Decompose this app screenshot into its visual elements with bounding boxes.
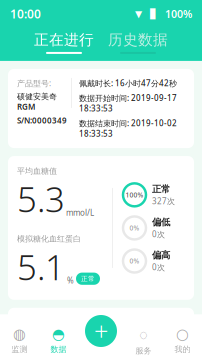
staticText: 0次	[152, 262, 165, 272]
staticText: 正常	[81, 275, 95, 283]
staticText: ›	[178, 318, 183, 339]
staticText: mmol/L	[66, 207, 94, 218]
staticText: 模拟糖化血红蛋白	[17, 234, 81, 244]
staticText: 正常	[152, 183, 170, 195]
staticText: +	[94, 314, 108, 348]
staticText: 历史数据	[108, 31, 168, 49]
staticText: 10:00	[10, 6, 41, 22]
staticText: 数据	[50, 344, 66, 354]
staticText: 共检测 327次 详细列表	[19, 321, 131, 335]
staticText: ▊	[150, 9, 157, 19]
staticText: ◌	[139, 324, 148, 344]
staticText: 数据开始时间: 2019-09-17 18:33:53	[79, 93, 177, 114]
staticText: 偏高	[152, 249, 170, 261]
staticText: ○	[176, 326, 189, 342]
button[interactable]: 共检测 327次 详细列表	[8, 308, 194, 349]
staticText: ◍	[13, 326, 26, 342]
button[interactable]: ◍	[0, 326, 39, 354]
staticText: 100%	[125, 190, 143, 199]
staticText: 0%	[129, 223, 139, 232]
staticText: 佩戴时长: 16小时47分42秒	[79, 78, 177, 89]
staticText: 数据结束时间: 2019-10-02 18:33:53	[79, 118, 177, 139]
staticText: 监测	[11, 344, 27, 354]
staticText: 我的	[174, 344, 190, 354]
button[interactable]: 正在进行	[34, 31, 94, 54]
staticText: 327次	[152, 196, 175, 206]
button[interactable]: 历史数据	[108, 31, 168, 54]
staticText: 5.1	[17, 244, 65, 290]
staticText: 硕健安美奇RGM	[17, 92, 57, 112]
button[interactable]: ◌	[124, 324, 163, 356]
staticText: 平均血糖值	[17, 166, 57, 176]
staticText: %	[67, 275, 74, 286]
staticText: 0次	[152, 229, 165, 239]
staticText: 0%	[129, 257, 139, 265]
staticText: 偏低	[152, 216, 170, 228]
button[interactable]: ○	[163, 326, 202, 354]
staticText: 服务	[135, 346, 151, 356]
staticText: 产品型号:	[17, 78, 51, 89]
staticText: 100%	[165, 7, 192, 21]
staticText: 5.3	[17, 176, 65, 222]
button[interactable]: Add	[85, 314, 117, 348]
staticText: S/N:0000349	[17, 115, 67, 126]
staticText: 正在进行	[34, 31, 94, 49]
staticText: ◓	[52, 326, 65, 342]
staticText: ▼	[135, 9, 142, 19]
button[interactable]: ◓	[39, 326, 78, 354]
